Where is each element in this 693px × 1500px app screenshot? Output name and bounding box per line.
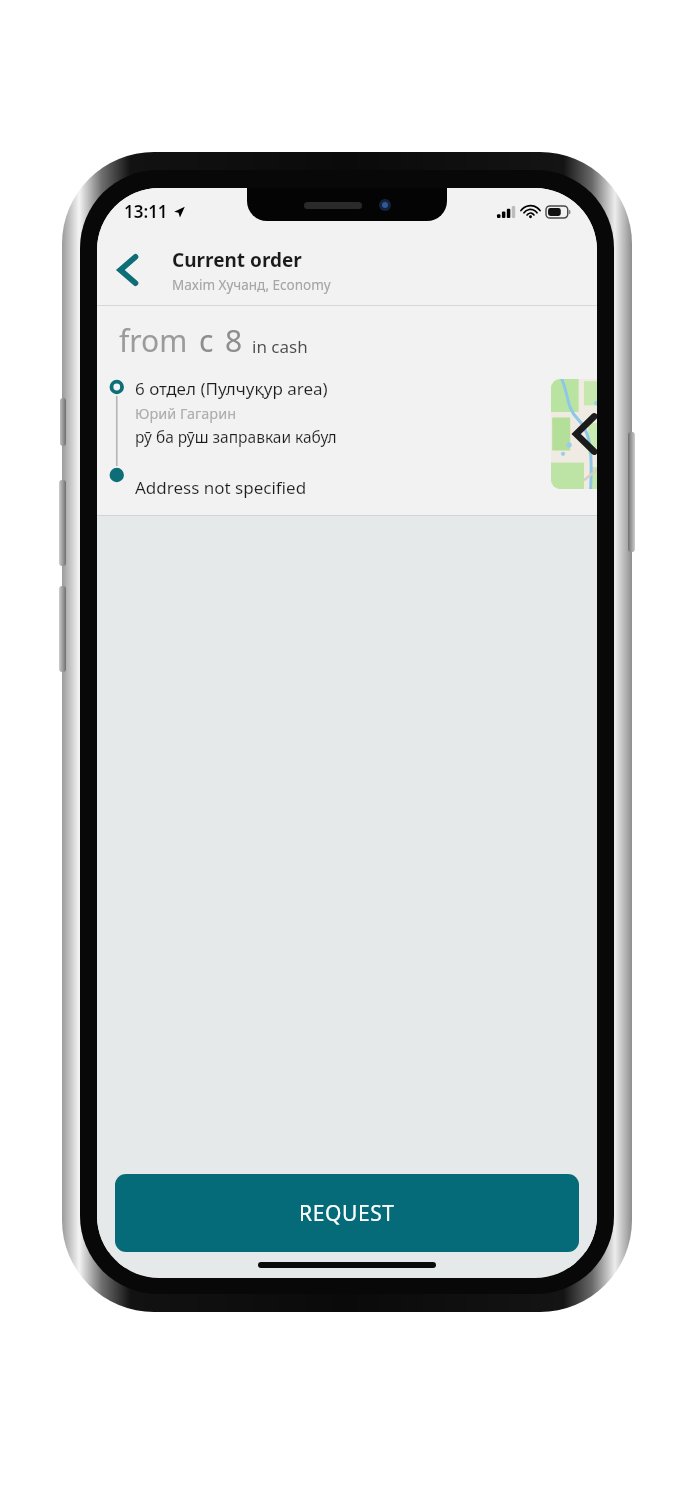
staticText: 6 отдел (Пулчуқур area) bbox=[135, 377, 328, 400]
staticText: Юрий Гагарин bbox=[135, 403, 237, 423]
staticText: REQUEST bbox=[299, 1199, 395, 1228]
staticText: in cash bbox=[252, 335, 308, 358]
staticText: 8 bbox=[225, 320, 243, 361]
staticText: from bbox=[119, 320, 188, 361]
staticText: Maxim Хучанд, Economy bbox=[172, 276, 331, 294]
button[interactable]: Map preview bbox=[551, 379, 597, 489]
staticText: c bbox=[199, 320, 214, 361]
staticText: Current order bbox=[172, 247, 302, 273]
staticText: 13:11 bbox=[124, 200, 168, 223]
button[interactable]: Back bbox=[97, 240, 157, 300]
staticText: рӯ ба рӯш заправкаи кабул bbox=[135, 426, 337, 447]
button[interactable]: REQUEST bbox=[115, 1174, 579, 1252]
staticText: Address not specified bbox=[135, 476, 307, 499]
